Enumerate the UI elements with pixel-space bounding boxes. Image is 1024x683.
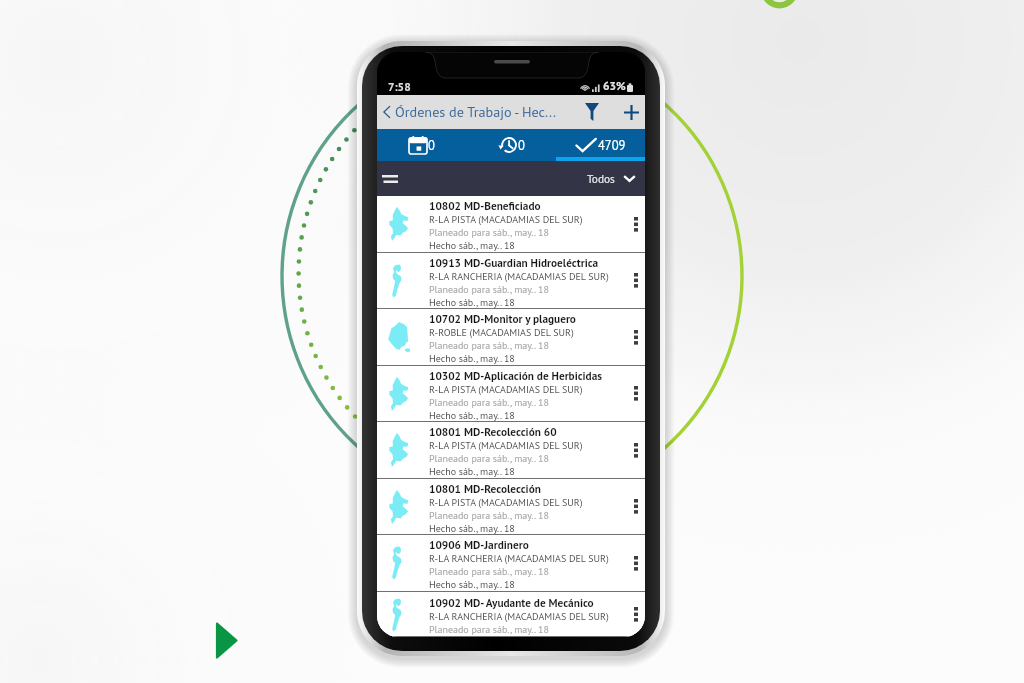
staticText: R-LA RANCHERIA (MACADAMIAS DEL SUR): [429, 270, 609, 283]
staticText: 0: [518, 137, 525, 153]
staticText: R-ROBLE (MACADAMIAS DEL SUR): [429, 326, 574, 339]
button[interactable]: 4709: [556, 129, 645, 161]
staticText: Planeado para sáb., may.. 18: [429, 283, 549, 296]
button[interactable]: Back: [377, 95, 395, 129]
staticText: R-LA PISTA (MACADAMIAS DEL SUR): [429, 439, 583, 452]
button[interactable]: More options: [626, 309, 645, 365]
button[interactable]: 10902 MD- Ayudante de Mecánico: [377, 592, 645, 637]
button[interactable]: Todos: [587, 161, 645, 196]
staticText: R-LA RANCHERIA (MACADAMIAS DEL SUR): [429, 610, 609, 623]
staticText: 10801 MD-Recolección: [429, 481, 541, 496]
button[interactable]: 0: [377, 129, 467, 161]
button[interactable]: Filter: [566, 95, 617, 129]
staticText: Planeado para sáb., may.. 18: [429, 396, 549, 409]
staticText: Hecho sáb., may.. 18: [429, 465, 515, 478]
staticText: Planeado para sáb., may.. 18: [429, 452, 549, 465]
staticText: R-LA PISTA (MACADAMIAS DEL SUR): [429, 383, 583, 396]
staticText: Planeado para sáb., may.. 18: [429, 509, 549, 522]
staticText: Hecho sáb., may.. 18: [429, 522, 515, 534]
staticText: Planeado para sáb., may.. 18: [429, 226, 549, 239]
staticText: Hecho sáb., may.. 18: [429, 239, 515, 252]
button[interactable]: 10913 MD-Guardian Hidroeléctrica: [377, 253, 645, 309]
staticText: 0: [428, 137, 435, 153]
staticText: 10801 MD-Recolección 60: [429, 424, 557, 439]
button[interactable]: More options: [626, 366, 645, 421]
staticText: 63%: [603, 78, 626, 93]
staticText: 10302 MD-Aplicación de Herbicidas: [429, 368, 603, 383]
button[interactable]: More options: [626, 253, 645, 308]
button[interactable]: 10302 MD-Aplicación de Herbicidas: [377, 366, 645, 422]
button[interactable]: More options: [626, 422, 645, 478]
staticText: Órdenes de Trabajo - Hec...: [395, 103, 566, 121]
staticText: Hecho sáb., may.. 18: [429, 352, 515, 365]
button[interactable]: More options: [626, 196, 645, 252]
staticText: R-LA PISTA (MACADAMIAS DEL SUR): [429, 213, 583, 226]
staticText: Todos: [587, 171, 615, 186]
button[interactable]: More options: [626, 535, 645, 591]
staticText: 4709: [598, 137, 626, 153]
staticText: Planeado para sáb., may.. 18: [429, 623, 549, 636]
staticText: Hecho sáb., may.. 18: [429, 578, 515, 591]
button[interactable]: 10702 MD-Monitor y plaguero: [377, 309, 645, 366]
staticText: R-LA RANCHERIA (MACADAMIAS DEL SUR): [429, 552, 609, 565]
button[interactable]: 10801 MD-Recolección 60: [377, 422, 645, 479]
button[interactable]: 0: [467, 129, 556, 161]
button[interactable]: Sort: [377, 161, 403, 196]
staticText: Hecho sáb., may.. 18: [429, 296, 515, 308]
staticText: 10913 MD-Guardian Hidroeléctrica: [429, 255, 599, 270]
button[interactable]: Add: [617, 95, 645, 129]
staticText: 10906 MD-Jardinero: [429, 537, 529, 552]
staticText: R-LA PISTA (MACADAMIAS DEL SUR): [429, 496, 583, 509]
button[interactable]: More options: [626, 479, 645, 534]
button[interactable]: 10802 MD-Beneficiado: [377, 196, 645, 253]
button[interactable]: More options: [626, 592, 645, 637]
button[interactable]: 10801 MD-Recolección: [377, 479, 645, 535]
staticText: 10802 MD-Beneficiado: [429, 198, 541, 213]
staticText: 10902 MD- Ayudante de Mecánico: [429, 595, 594, 610]
button[interactable]: 10906 MD-Jardinero: [377, 535, 645, 592]
staticText: Planeado para sáb., may.. 18: [429, 339, 549, 352]
staticText: Planeado para sáb., may.. 18: [429, 565, 549, 578]
staticText: Hecho sáb., may.. 18: [429, 409, 515, 421]
staticText: 10702 MD-Monitor y plaguero: [429, 311, 576, 326]
staticText: 7:58: [388, 79, 411, 94]
